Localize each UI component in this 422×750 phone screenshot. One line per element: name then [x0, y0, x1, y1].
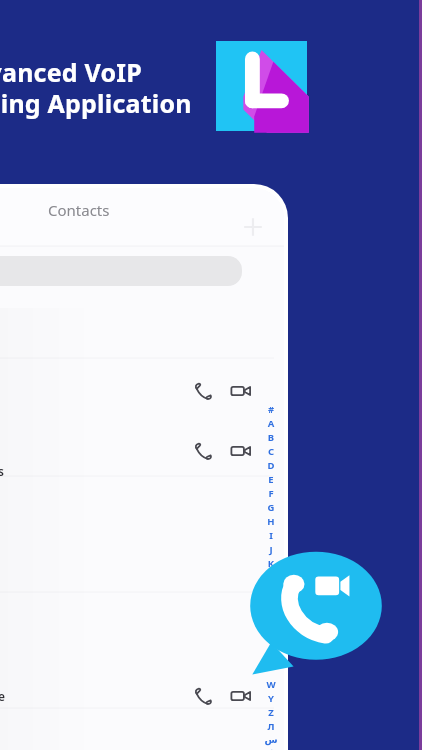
staticText: C [264, 445, 278, 459]
button[interactable]: Y [264, 692, 278, 706]
staticText: W [264, 678, 278, 692]
staticText: A [264, 417, 278, 431]
button[interactable]: E [264, 473, 278, 487]
staticText: e [0, 688, 6, 704]
button[interactable]: F [264, 487, 278, 501]
staticText: I [264, 529, 278, 543]
button[interactable]: ま [264, 748, 278, 750]
button[interactable]: Voice call [191, 439, 215, 463]
staticText: ま [264, 748, 278, 750]
staticText: س [264, 734, 278, 748]
button[interactable]: س [264, 734, 278, 748]
staticText: F [264, 487, 278, 501]
staticText: Contacts [48, 200, 110, 220]
button[interactable]: Voice call [191, 379, 215, 403]
button[interactable]: App icon [216, 41, 307, 131]
button[interactable]: Add contact [240, 214, 266, 240]
staticText: Л [264, 720, 278, 734]
staticText: Z [264, 706, 278, 720]
button[interactable]: Video call [229, 379, 253, 403]
staticText: Advanced VoIP [0, 55, 142, 89]
button[interactable]: J [264, 543, 278, 557]
staticText: K [264, 557, 278, 571]
staticText: s [0, 463, 4, 479]
staticText: # [264, 403, 278, 417]
button[interactable]: Contacts [48, 200, 168, 228]
button[interactable]: B [264, 431, 278, 445]
staticText: Y [264, 692, 278, 706]
button[interactable]: Video call [229, 439, 253, 463]
button[interactable]: G [264, 501, 278, 515]
staticText: J [264, 543, 278, 557]
button[interactable]: Advanced VoIP [0, 55, 214, 125]
staticText: Calling Application [0, 86, 192, 120]
button[interactable]: Video call [229, 684, 253, 708]
button[interactable]: H [264, 515, 278, 529]
button[interactable]: Start a call [246, 545, 386, 680]
button[interactable]: A [264, 417, 278, 431]
staticText: D [264, 459, 278, 473]
button[interactable]: K [264, 557, 278, 571]
button[interactable]: Л [264, 720, 278, 734]
staticText: H [264, 515, 278, 529]
staticText: G [264, 501, 278, 515]
button[interactable]: Z [264, 706, 278, 720]
button[interactable]: I [264, 529, 278, 543]
button[interactable]: C [264, 445, 278, 459]
button[interactable]: # [264, 403, 278, 417]
button[interactable]: Voice call [191, 684, 215, 708]
staticText: E [264, 473, 278, 487]
button[interactable]: W [264, 678, 278, 692]
button[interactable]: D [264, 459, 278, 473]
staticText: B [264, 431, 278, 445]
